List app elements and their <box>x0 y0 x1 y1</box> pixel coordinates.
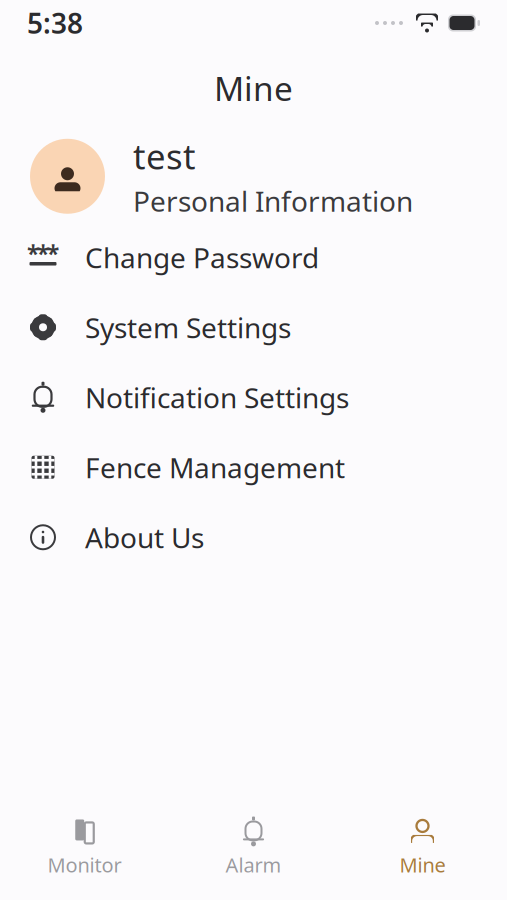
staticText: Alarm <box>225 851 281 878</box>
staticText: Mine <box>214 66 293 110</box>
staticText: * <box>37 238 49 269</box>
button[interactable]: Mine <box>338 811 507 884</box>
staticText: * <box>47 238 59 269</box>
button[interactable]: Fence Management <box>0 432 507 502</box>
button[interactable]: Notification Settings <box>0 362 507 432</box>
staticText: System Settings <box>85 309 291 346</box>
staticText: Mine <box>399 851 445 878</box>
staticText: Personal Information <box>133 182 413 219</box>
button[interactable]: * <box>0 222 507 292</box>
button[interactable]: About Us <box>0 502 507 572</box>
button[interactable]: Alarm <box>169 811 338 884</box>
staticText: * <box>27 238 39 269</box>
staticText: 5:38 <box>27 4 83 42</box>
button[interactable]: System Settings <box>0 292 507 362</box>
staticText: test <box>133 133 196 179</box>
staticText: About Us <box>85 519 204 556</box>
staticText: Fence Management <box>85 449 345 486</box>
staticText: Notification Settings <box>85 379 349 416</box>
button[interactable]: Monitor <box>0 811 169 884</box>
staticText: Change Password <box>85 239 319 276</box>
button[interactable]: test <box>0 130 507 222</box>
staticText: Monitor <box>47 851 121 878</box>
